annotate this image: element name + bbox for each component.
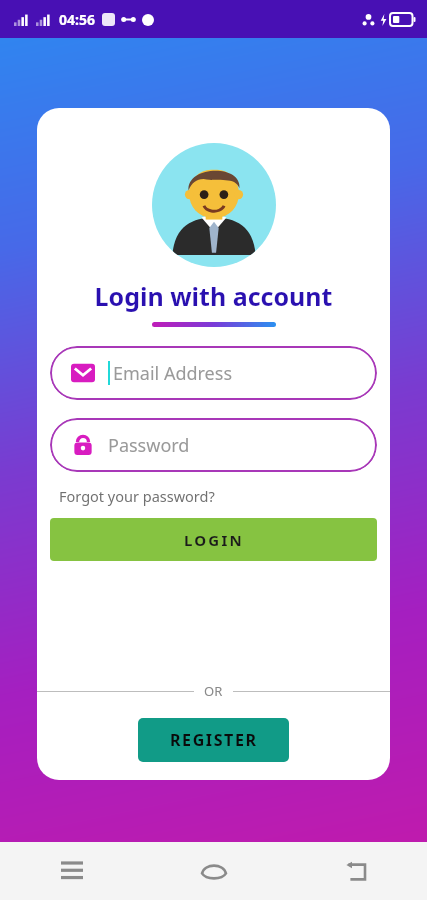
button[interactable]: REGISTER (138, 718, 289, 762)
other: Email (71, 361, 95, 385)
staticText: REGISTER (170, 729, 258, 751)
staticText: Email Address (113, 361, 233, 386)
button[interactable]: Password (50, 418, 377, 472)
other: Password (71, 433, 95, 457)
button[interactable]: Forgot your password? (59, 486, 215, 506)
staticText: 04:56 (59, 10, 95, 29)
button[interactable]: Back (285, 842, 427, 900)
button[interactable]: LOGIN (50, 518, 377, 561)
button[interactable]: Menu (0, 842, 143, 900)
staticText: Password (108, 433, 190, 458)
staticText: LOGIN (184, 530, 244, 550)
staticText: OR (204, 682, 223, 700)
button[interactable]: Email (50, 346, 377, 400)
staticText: Login with account (37, 279, 390, 313)
button[interactable]: Home (143, 842, 285, 900)
